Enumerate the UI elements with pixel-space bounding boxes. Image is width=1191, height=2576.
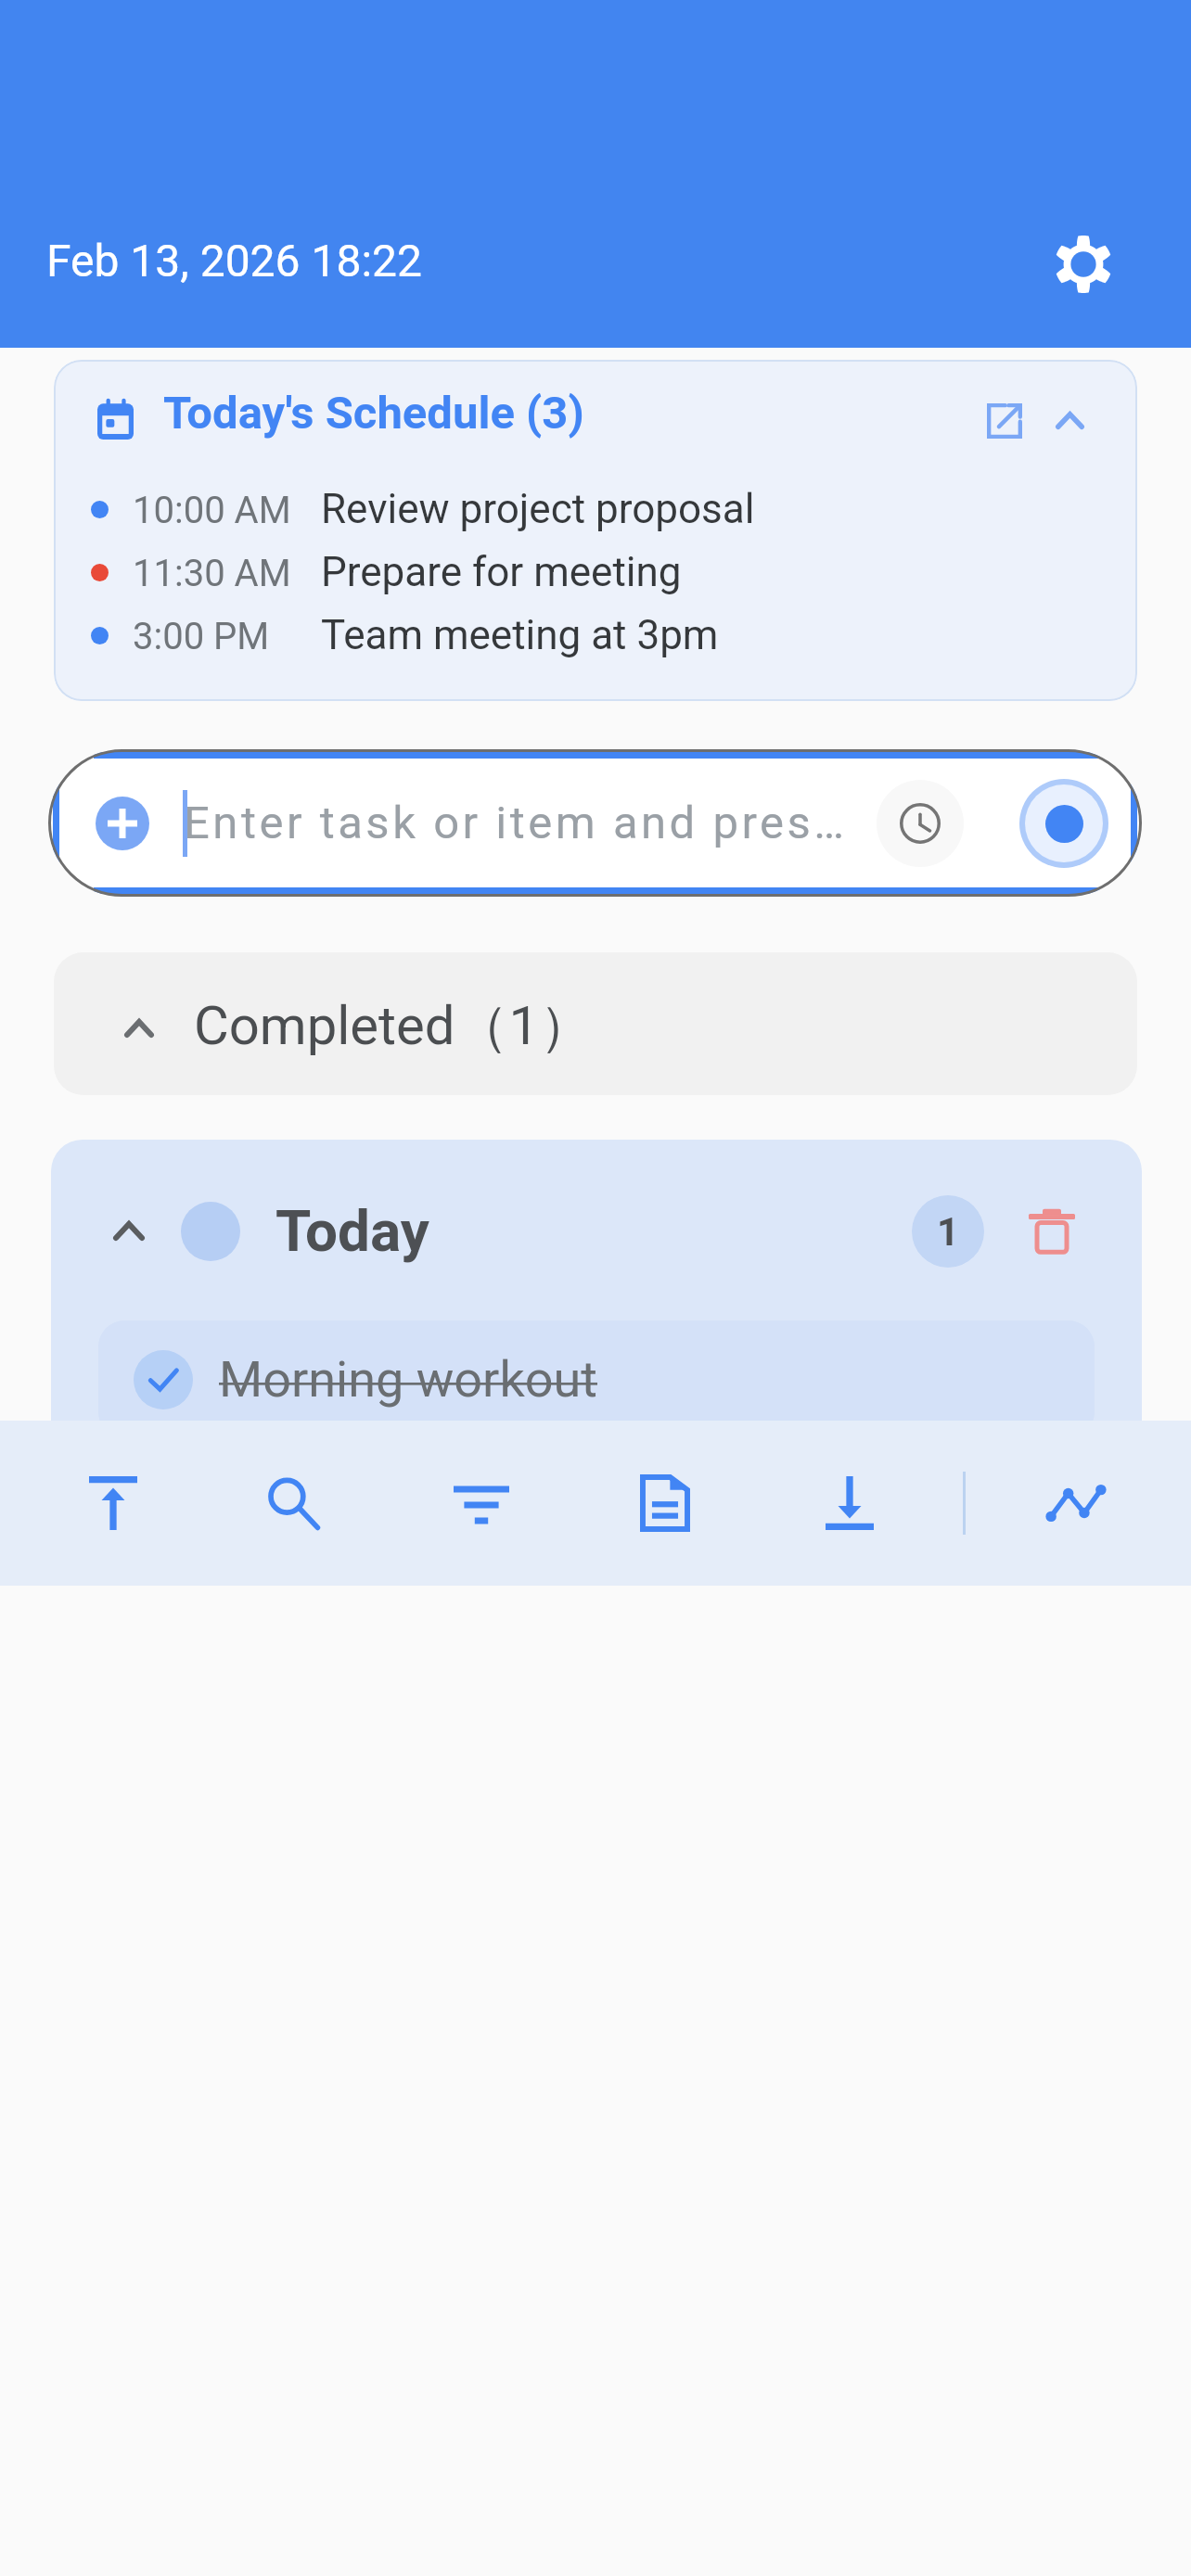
staticText: Enter task or item and pres… <box>184 797 848 849</box>
button[interactable]: Notes <box>613 1451 717 1555</box>
button[interactable]: Today <box>51 1140 1142 1323</box>
staticText: 10:00 AM <box>133 489 291 532</box>
staticText: Prepare for meeting <box>321 548 682 596</box>
staticText: Today's Schedule (3) <box>163 387 584 440</box>
staticText: 3:00 PM <box>133 615 270 658</box>
staticText: Completed（1） <box>194 992 594 1060</box>
staticText: Morning workout <box>219 1350 598 1409</box>
button[interactable]: 10:00 AM <box>54 479 1137 541</box>
button[interactable]: Settings <box>1048 229 1119 300</box>
button[interactable]: Morning workout <box>98 1320 1095 1438</box>
button[interactable]: Collapse schedule <box>1039 389 1100 451</box>
button[interactable]: Sort <box>429 1451 533 1555</box>
staticText: Today <box>275 1197 430 1265</box>
staticText: Team meeting at 3pm <box>321 611 719 659</box>
button[interactable]: Move to top <box>61 1451 165 1555</box>
button[interactable]: 11:30 AM <box>54 542 1137 604</box>
button[interactable]: Enter task or item and pres… <box>48 749 1142 897</box>
button[interactable]: 3:00 PM <box>54 606 1137 667</box>
button[interactable]: Input mode <box>1019 779 1108 868</box>
staticText: 1 <box>937 1209 960 1255</box>
button[interactable]: Statistics <box>1024 1451 1128 1555</box>
staticText: Review project proposal <box>321 485 755 533</box>
button[interactable]: Search <box>241 1451 345 1555</box>
button[interactable]: Open full schedule <box>974 390 1035 452</box>
button[interactable]: Delete group <box>1018 1198 1085 1265</box>
button[interactable]: Set reminder time <box>877 780 964 867</box>
button[interactable]: Download <box>798 1451 902 1555</box>
staticText: Feb 13, 2026 18:22 <box>46 235 422 287</box>
staticText: 11:30 AM <box>133 552 291 595</box>
button[interactable]: Completed（1） <box>54 952 1137 1095</box>
